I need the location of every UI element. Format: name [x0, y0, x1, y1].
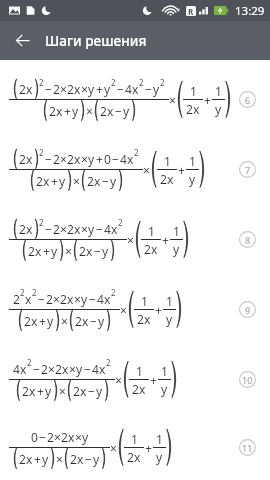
- button[interactable]: 2x: [0, 64, 270, 134]
- staticText: 7: [245, 164, 251, 176]
- staticText: y: [88, 81, 95, 97]
- staticText: 2: [13, 291, 20, 307]
- staticText: y: [123, 103, 130, 119]
- staticText: ×: [169, 92, 176, 108]
- staticText: −: [45, 221, 52, 237]
- staticText: −: [88, 383, 95, 399]
- staticText: 2: [32, 287, 37, 298]
- staticText: 2x: [24, 313, 38, 329]
- staticText: 2: [118, 217, 123, 228]
- staticText: −: [38, 291, 45, 307]
- staticText: y: [93, 451, 100, 467]
- button[interactable]: 4x: [0, 344, 270, 414]
- staticText: ×: [74, 291, 81, 307]
- staticText: +: [145, 440, 152, 456]
- staticText: 2: [20, 287, 25, 298]
- staticText: 2: [47, 429, 54, 445]
- staticText: 2: [39, 147, 44, 158]
- staticText: −: [90, 313, 97, 329]
- staticText: 1: [136, 363, 143, 379]
- staticText: 2x: [67, 221, 81, 237]
- staticText: +: [178, 162, 185, 178]
- staticText: y: [98, 313, 105, 329]
- staticText: y: [173, 241, 180, 257]
- staticText: 2x: [87, 173, 101, 189]
- staticText: +: [96, 151, 103, 167]
- staticText: ×: [73, 173, 80, 189]
- staticText: y: [153, 81, 160, 97]
- staticText: 2: [139, 77, 144, 88]
- staticText: 2: [111, 287, 116, 298]
- staticText: ×: [86, 103, 93, 119]
- staticText: −: [94, 243, 101, 259]
- staticText: 2x: [132, 381, 146, 397]
- staticText: y: [104, 81, 111, 97]
- staticText: 2: [106, 357, 111, 368]
- staticText: 2x: [73, 383, 87, 399]
- staticText: ×: [81, 221, 88, 237]
- staticText: 1: [141, 293, 148, 309]
- staticText: y: [161, 381, 168, 397]
- staticText: +: [51, 173, 58, 189]
- staticText: 2x: [19, 151, 33, 167]
- button[interactable]: 2x: [0, 134, 270, 204]
- staticText: ×: [110, 440, 117, 456]
- button[interactable]: 2: [0, 274, 270, 344]
- staticText: 1: [131, 431, 138, 447]
- staticText: 2: [46, 291, 53, 307]
- staticText: 2x: [19, 81, 33, 97]
- staticText: 2x: [61, 429, 75, 445]
- staticText: y: [96, 383, 103, 399]
- staticText: 4x: [125, 81, 139, 97]
- staticText: −: [117, 81, 124, 97]
- staticText: y: [156, 449, 163, 465]
- staticText: +: [155, 302, 162, 318]
- staticText: +: [162, 232, 169, 248]
- staticText: +: [43, 243, 50, 259]
- staticText: 1: [164, 153, 171, 169]
- staticText: 2x: [75, 313, 89, 329]
- staticText: y: [59, 173, 66, 189]
- staticText: ×: [75, 429, 82, 445]
- staticText: x: [25, 291, 32, 307]
- staticText: 2: [39, 217, 44, 228]
- staticText: 2x: [19, 451, 33, 467]
- staticText: 2x: [49, 103, 63, 119]
- staticText: 11: [242, 442, 253, 454]
- staticText: 2: [53, 151, 60, 167]
- staticText: y: [45, 383, 52, 399]
- staticText: 1: [215, 83, 222, 99]
- staticText: y: [42, 451, 49, 467]
- staticText: ×: [60, 81, 67, 97]
- staticText: y: [215, 101, 222, 117]
- staticText: 0: [31, 429, 38, 445]
- button[interactable]: 0: [0, 414, 270, 480]
- staticText: 1: [161, 363, 168, 379]
- staticText: ×: [54, 429, 61, 445]
- staticText: 9: [245, 304, 251, 316]
- staticText: 1: [173, 223, 180, 239]
- staticText: −: [39, 429, 46, 445]
- staticText: ×: [81, 151, 88, 167]
- staticText: 2x: [100, 103, 114, 119]
- staticText: ×: [60, 221, 67, 237]
- staticText: 2: [134, 147, 139, 158]
- staticText: 4x: [104, 221, 118, 237]
- button[interactable]: Back: [0, 21, 45, 60]
- staticText: 0: [104, 151, 111, 167]
- button[interactable]: 2x: [0, 204, 270, 274]
- staticText: 10: [242, 374, 253, 386]
- staticText: 2x: [67, 81, 81, 97]
- staticText: 2x: [79, 243, 93, 259]
- staticText: ×: [143, 162, 150, 178]
- staticText: +: [34, 451, 41, 467]
- staticText: −: [84, 361, 91, 377]
- staticText: 4x: [97, 291, 111, 307]
- staticText: 2: [27, 357, 32, 368]
- staticText: −: [115, 103, 122, 119]
- staticText: 4x: [120, 151, 134, 167]
- staticText: ×: [53, 291, 60, 307]
- staticText: 2x: [144, 241, 158, 257]
- staticText: −: [45, 81, 52, 97]
- staticText: 2: [53, 81, 60, 97]
